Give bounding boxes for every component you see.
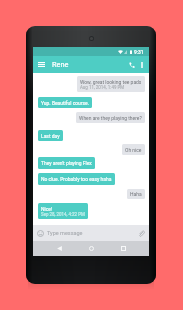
button[interactable]: Oh nice xyxy=(122,144,145,155)
staticText: Yup. Beautiful course. xyxy=(41,100,89,106)
staticText: Sep 28, 2014, 4:22 PM xyxy=(41,212,85,217)
button[interactable]: Call xyxy=(126,56,137,73)
button[interactable]: Attach file xyxy=(136,228,147,239)
staticText: Haha xyxy=(130,191,142,197)
button[interactable]: They aren't playing Flex xyxy=(38,157,95,169)
button[interactable]: Insert emoji xyxy=(35,228,46,239)
staticText: Nice! xyxy=(41,206,53,212)
button[interactable]: Last day xyxy=(38,130,63,141)
staticText: Wow, great looking tee pads xyxy=(80,79,142,85)
button[interactable]: More options xyxy=(137,56,147,73)
staticText: When are they playing there? xyxy=(79,115,142,121)
button[interactable]: Nice! xyxy=(38,203,88,219)
button[interactable]: Recent apps xyxy=(113,241,133,256)
button[interactable]: Haha xyxy=(127,189,145,199)
button[interactable]: Back xyxy=(49,241,69,256)
staticText: Rene xyxy=(52,60,69,69)
button[interactable]: No clue. Probably too easy haha xyxy=(38,173,115,185)
staticText: Oh nice xyxy=(125,147,142,153)
staticText: 9:31 xyxy=(134,49,144,55)
staticText: Last day xyxy=(41,133,60,139)
button[interactable]: Open navigation menu xyxy=(36,56,47,73)
staticText: No clue. Probably too easy haha xyxy=(41,176,112,182)
button[interactable]: Wow, great looking tee pads xyxy=(77,76,145,92)
staticText: Type message xyxy=(47,230,83,236)
staticText: They aren't playing Flex xyxy=(41,160,92,166)
button[interactable]: When are they playing there? xyxy=(76,112,145,123)
button[interactable]: Yup. Beautiful course. xyxy=(38,97,92,108)
staticText: Aug 11, 2014, 1:49 PM xyxy=(80,85,125,90)
button[interactable]: Home xyxy=(81,241,101,256)
